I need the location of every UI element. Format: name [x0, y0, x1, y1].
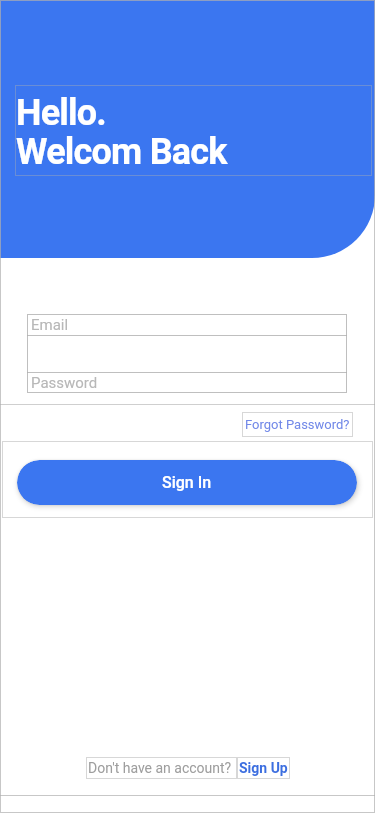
- staticText: Sign Up: [239, 760, 288, 776]
- staticText: Password: [31, 374, 98, 392]
- staticText: Sign In: [162, 473, 212, 492]
- staticText: Don't have an account?: [88, 760, 235, 776]
- button[interactable]: Sign In: [17, 460, 357, 505]
- staticText: Welcom Back: [16, 131, 227, 173]
- staticText: Hello.: [16, 92, 107, 134]
- button[interactable]: Password: [27, 372, 347, 393]
- button[interactable]: Forgot Password?: [242, 412, 353, 437]
- button[interactable]: Sign Up: [237, 757, 290, 779]
- staticText: Forgot Password?: [245, 417, 350, 432]
- staticText: Email: [31, 316, 69, 334]
- button[interactable]: Don't have an account?: [86, 757, 237, 779]
- button[interactable]: Email: [27, 314, 347, 336]
